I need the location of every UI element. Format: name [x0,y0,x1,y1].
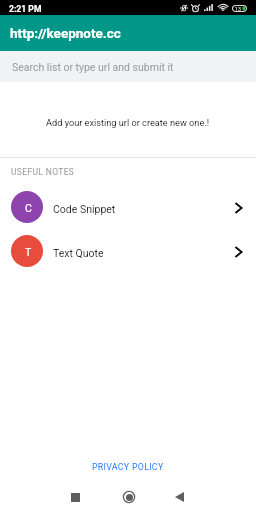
button[interactable]: PRIVACY POLICY [84,457,172,477]
staticText: http://keepnote.cc [10,25,121,41]
staticText: 2:21 PM [9,4,42,14]
button[interactable]: C [0,185,256,229]
button[interactable]: Back [165,483,193,511]
staticText: Add your existing url or create new one.… [46,117,210,128]
staticText: 13 [235,6,241,12]
staticText: T [25,246,32,258]
button[interactable]: T [0,229,256,273]
staticText: C [25,202,32,214]
button[interactable]: Search list or type url and submit it [0,51,256,82]
staticText: Text Quote [53,247,104,259]
staticText: Search list or type url and submit it [12,61,174,73]
button[interactable]: Recent apps [61,483,89,511]
staticText: USEFUL NOTES [11,167,75,177]
staticText: Code Snippet [53,203,116,215]
button[interactable]: Home [115,483,143,511]
